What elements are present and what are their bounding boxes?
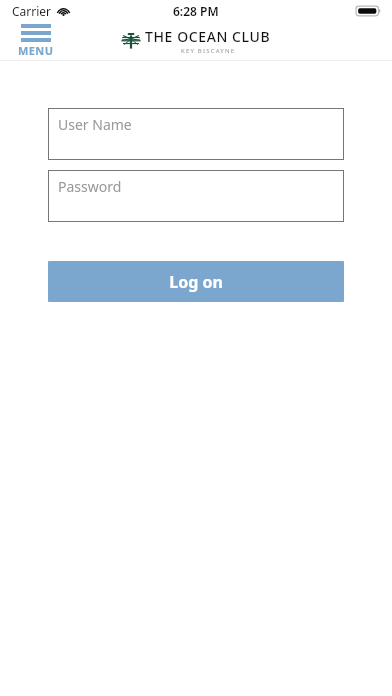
staticText: KEY BISCAYNE bbox=[181, 47, 236, 55]
button[interactable]: Password bbox=[48, 170, 344, 222]
staticText: User Name bbox=[58, 115, 132, 134]
staticText: MENU bbox=[18, 43, 54, 58]
button[interactable]: Log on bbox=[48, 261, 344, 302]
staticText: THE OCEAN CLUB bbox=[145, 27, 271, 46]
staticText: 6:28 PM bbox=[173, 3, 219, 19]
staticText: Carrier bbox=[12, 3, 52, 19]
staticText: Log on bbox=[169, 271, 223, 293]
button[interactable]: User Name bbox=[48, 108, 344, 160]
staticText: Password bbox=[58, 177, 122, 196]
button[interactable]: Menu bbox=[18, 24, 54, 58]
